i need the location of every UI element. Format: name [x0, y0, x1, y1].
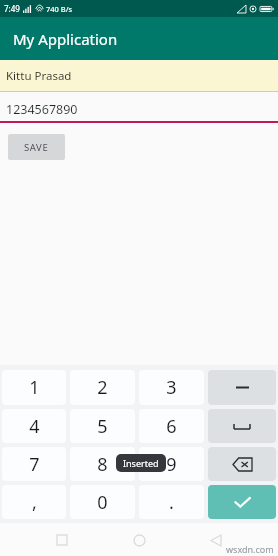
staticText: wsxdn.com	[226, 543, 274, 555]
button[interactable]: 6	[139, 409, 204, 443]
staticText: 5	[97, 414, 108, 439]
button[interactable]: 7	[2, 447, 66, 481]
staticText: 2	[97, 375, 108, 400]
staticText: 1	[29, 375, 40, 400]
staticText: Inserted	[123, 457, 159, 469]
button[interactable]: 0	[70, 485, 135, 519]
button[interactable]: 2	[70, 370, 135, 405]
staticText: .	[169, 490, 174, 515]
button[interactable]: SAVE	[8, 134, 65, 160]
staticText: My Application	[13, 29, 118, 49]
button[interactable]: Kittu Prasad	[0, 60, 278, 92]
button[interactable]: Recent apps	[47, 525, 77, 555]
staticText: 7	[29, 452, 40, 477]
button[interactable]: .	[139, 485, 204, 519]
staticText: 3	[166, 375, 177, 400]
staticText: 740 B/s	[46, 4, 73, 14]
button[interactable]: ,	[2, 485, 66, 519]
button[interactable]: Dash	[208, 370, 276, 405]
staticText: 8	[97, 452, 108, 477]
staticText: ,	[32, 490, 37, 515]
staticText: 9	[166, 452, 177, 477]
button[interactable]: Back	[201, 525, 231, 555]
button[interactable]: 1234567890	[0, 97, 278, 123]
button[interactable]: Backspace	[208, 447, 276, 481]
button[interactable]: 8	[70, 447, 135, 481]
staticText: SAVE	[24, 141, 49, 154]
button[interactable]: 3	[139, 370, 204, 405]
button[interactable]: 1	[2, 370, 66, 405]
button[interactable]: Space	[208, 409, 276, 443]
button[interactable]: 9	[139, 447, 204, 481]
staticText: 4	[29, 414, 40, 439]
staticText: 7:49	[4, 3, 20, 14]
button[interactable]: 5	[70, 409, 135, 443]
button[interactable]: 4	[2, 409, 66, 443]
button[interactable]: Home	[124, 525, 154, 555]
staticText: 0	[97, 490, 108, 515]
staticText: 1234567890	[6, 101, 78, 118]
staticText: Kittu Prasad	[6, 68, 72, 84]
button[interactable]: Done	[208, 485, 276, 519]
staticText: 6	[166, 414, 177, 439]
